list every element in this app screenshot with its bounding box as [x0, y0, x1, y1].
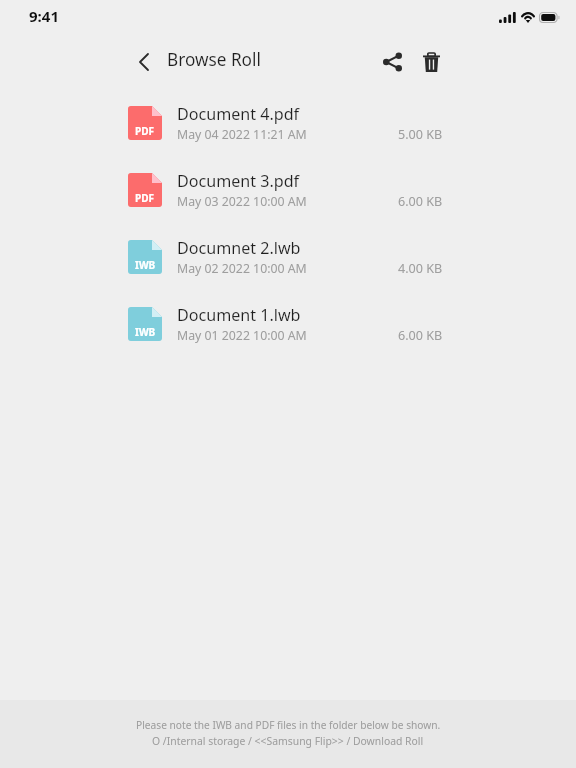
staticText: May 04 2022 11:21 AM	[177, 126, 307, 143]
staticText: Browse Roll	[167, 48, 261, 71]
staticText: IWB	[135, 325, 156, 339]
button[interactable]: Share	[376, 46, 408, 78]
button[interactable]: Back	[128, 46, 160, 78]
staticText: IWB	[135, 258, 156, 272]
staticText: May 02 2022 10:00 AM	[177, 260, 307, 277]
staticText: May 01 2022 10:00 AM	[177, 327, 307, 344]
staticText: 4.00 KB	[398, 260, 443, 277]
staticText: 9:41	[29, 6, 59, 26]
staticText: Document 1.lwb	[177, 304, 301, 326]
staticText: PDF	[135, 191, 155, 205]
staticText: O /Internal storage / <<Samsung Flip>> /…	[152, 734, 424, 748]
staticText: 6.00 KB	[398, 327, 443, 344]
button[interactable]: PDF	[0, 89, 576, 156]
staticText: 5.00 KB	[398, 126, 443, 143]
staticText: PDF	[135, 124, 155, 138]
staticText: 6.00 KB	[398, 193, 443, 210]
button[interactable]: IWB	[0, 290, 576, 357]
staticText: Please note the IWB and PDF files in the…	[136, 718, 441, 732]
staticText: Documnet 2.lwb	[177, 237, 301, 259]
button[interactable]: Delete	[415, 46, 447, 78]
staticText: Document 3.pdf	[177, 170, 300, 192]
staticText: May 03 2022 10:00 AM	[177, 193, 307, 210]
staticText: Document 4.pdf	[177, 103, 300, 125]
button[interactable]: PDF	[0, 156, 576, 223]
button[interactable]: IWB	[0, 223, 576, 290]
